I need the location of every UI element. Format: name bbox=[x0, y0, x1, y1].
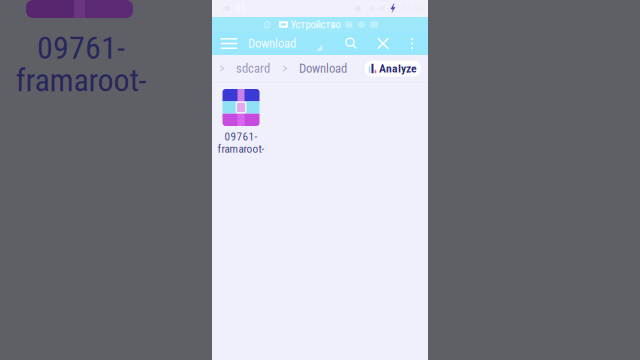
button[interactable]: Music bbox=[355, 21, 368, 28]
button[interactable]: Images bbox=[342, 21, 355, 28]
button[interactable]: Video bbox=[368, 21, 380, 27]
staticText: Download bbox=[248, 36, 296, 51]
staticText: Download bbox=[299, 61, 347, 76]
staticText: 09761- bbox=[37, 29, 125, 66]
staticText: Analyze bbox=[379, 62, 417, 75]
button[interactable]: Download bbox=[288, 61, 358, 76]
button[interactable]: Устройство bbox=[275, 18, 342, 31]
staticText: framaroot- bbox=[15, 61, 146, 99]
button[interactable]: Close bbox=[367, 32, 399, 55]
button[interactable]: More options bbox=[399, 32, 425, 55]
staticText: sdcard bbox=[236, 61, 270, 76]
staticText: 09761- bbox=[224, 130, 257, 143]
staticText: framaroot- bbox=[217, 142, 264, 156]
staticText: Устройство bbox=[290, 18, 340, 31]
button[interactable]: Analyze bbox=[364, 60, 421, 76]
button[interactable]: Search bbox=[335, 32, 367, 55]
button[interactable]: 09761- bbox=[216, 83, 266, 156]
button[interactable]: Menu bbox=[215, 32, 243, 55]
button[interactable]: sdcard bbox=[225, 61, 281, 76]
button[interactable]: Home bbox=[259, 20, 275, 28]
